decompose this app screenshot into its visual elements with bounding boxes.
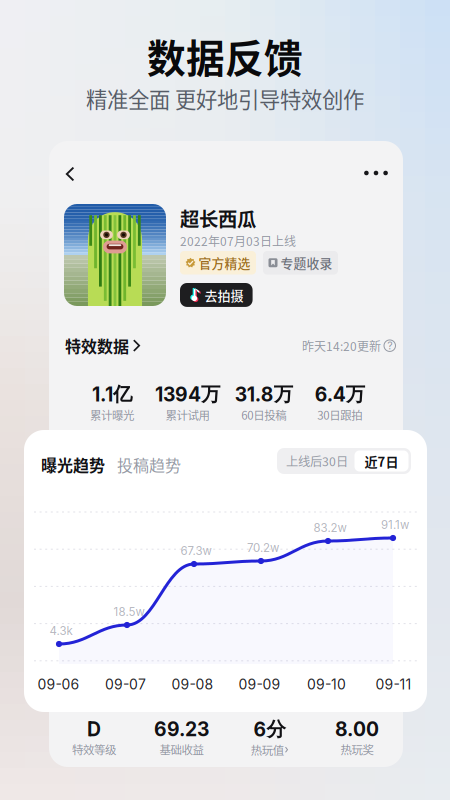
- staticText: 官方精选: [198, 253, 250, 272]
- staticText: 83.2w: [313, 521, 346, 535]
- staticText: 累计曝光: [90, 406, 134, 423]
- staticText: 昨天14:20更新: [302, 337, 381, 354]
- staticText: 69.23: [154, 717, 209, 741]
- staticText: ?: [387, 339, 392, 352]
- staticText: 特效等级: [72, 741, 116, 757]
- button[interactable]: 去拍摄: [180, 283, 253, 307]
- staticText: 70.2w: [247, 541, 279, 555]
- staticText: 60日投稿: [241, 406, 286, 423]
- staticText: 投稿趋势: [117, 453, 181, 476]
- staticText: 热玩奖: [340, 741, 373, 757]
- staticText: 特效数据: [65, 334, 129, 357]
- button[interactable]: 投稿趋势: [117, 453, 181, 476]
- staticText: 09-07: [105, 676, 146, 693]
- button[interactable]: 特效数据: [65, 334, 140, 357]
- staticText: 专题收录: [280, 253, 332, 272]
- staticText: 09-06: [37, 676, 79, 693]
- staticText: 超长西瓜: [180, 204, 256, 232]
- button[interactable]: More options: [353, 153, 399, 193]
- staticText: 1.1亿: [92, 382, 132, 406]
- staticText: 6分: [253, 717, 285, 741]
- staticText: 曝光趋势: [41, 453, 105, 476]
- button[interactable]: Back: [49, 154, 91, 194]
- staticText: D: [87, 717, 101, 741]
- staticText: 近7日: [364, 451, 398, 470]
- staticText: 累计试用: [165, 406, 209, 423]
- button[interactable]: 曝光趋势: [41, 453, 105, 476]
- staticText: 数据反馈: [147, 28, 303, 84]
- staticText: 精准全面 更好地引导特效创作: [86, 83, 364, 114]
- staticText: 09-09: [238, 676, 280, 693]
- staticText: 4.3k: [49, 624, 72, 638]
- staticText: 热玩值: [251, 741, 284, 758]
- staticText: 91.1w: [381, 518, 409, 532]
- staticText: 去拍摄: [205, 285, 244, 304]
- staticText: 1394万: [155, 382, 220, 406]
- staticText: 18.5w: [113, 605, 144, 619]
- staticText: 6.4万: [315, 382, 365, 406]
- button[interactable]: 上线后30日: [279, 450, 354, 471]
- staticText: 30日跟拍: [317, 406, 362, 423]
- staticText: 09-11: [375, 676, 411, 693]
- staticText: 2022年07月03日上线: [180, 232, 296, 249]
- staticText: 上线后30日: [286, 452, 348, 470]
- staticText: 31.8万: [235, 382, 293, 406]
- staticText: 8.00: [335, 717, 379, 741]
- button[interactable]: 近7日: [354, 450, 408, 471]
- staticText: 67.3w: [180, 544, 211, 558]
- staticText: 基础收益: [159, 741, 203, 757]
- staticText: 09-10: [307, 676, 346, 693]
- staticText: 09-08: [171, 676, 213, 693]
